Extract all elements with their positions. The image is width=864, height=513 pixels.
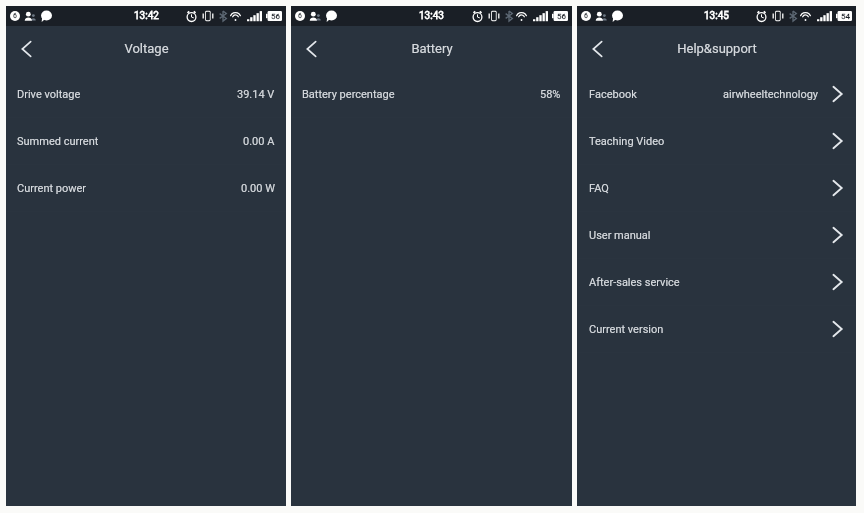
staticText: Current power [17, 182, 87, 195]
staticText: Facebook [589, 88, 637, 101]
staticText: 6 [13, 12, 17, 20]
staticText: User manual [589, 229, 651, 242]
staticText: Summed current [17, 135, 99, 148]
staticText: 13:42 [134, 10, 159, 22]
button[interactable]: FAQ [577, 165, 856, 211]
staticText: Battery [411, 41, 453, 56]
button[interactable]: After-sales service [577, 259, 856, 305]
staticText: 6 [298, 12, 302, 20]
button[interactable]: Current version [577, 306, 856, 352]
staticText: 13:45 [704, 10, 729, 22]
button[interactable]: Summed current [6, 118, 286, 164]
staticText: Teaching Video [589, 135, 665, 148]
staticText: 39.14 V [237, 88, 275, 101]
staticText: After-sales service [589, 276, 680, 289]
staticText: 58% [540, 88, 561, 101]
staticText: 54 [841, 12, 850, 21]
staticText: 56 [557, 12, 566, 21]
button[interactable]: User manual [577, 212, 856, 258]
staticText: Voltage [124, 41, 169, 56]
staticText: Help&support [677, 41, 757, 56]
staticText: 0.00 A [243, 135, 275, 148]
staticText: Battery percentage [302, 88, 395, 101]
staticText: Current version [589, 323, 664, 336]
button[interactable]: Current power [6, 165, 286, 211]
staticText: 0.00 W [241, 182, 275, 195]
staticText: Drive voltage [17, 88, 81, 101]
staticText: 56 [271, 12, 280, 21]
staticText: 6 [584, 12, 588, 20]
button[interactable]: Battery percentage [291, 71, 572, 117]
staticText: 13:43 [419, 10, 444, 22]
button[interactable]: Back [296, 34, 326, 64]
staticText: airwheeltechnology [723, 88, 819, 101]
button[interactable]: Teaching Video [577, 118, 856, 164]
button[interactable]: Drive voltage [6, 71, 286, 117]
button[interactable]: Back [582, 34, 612, 64]
button[interactable]: Back [11, 34, 41, 64]
staticText: FAQ [589, 182, 609, 195]
button[interactable]: Facebook [577, 71, 856, 117]
